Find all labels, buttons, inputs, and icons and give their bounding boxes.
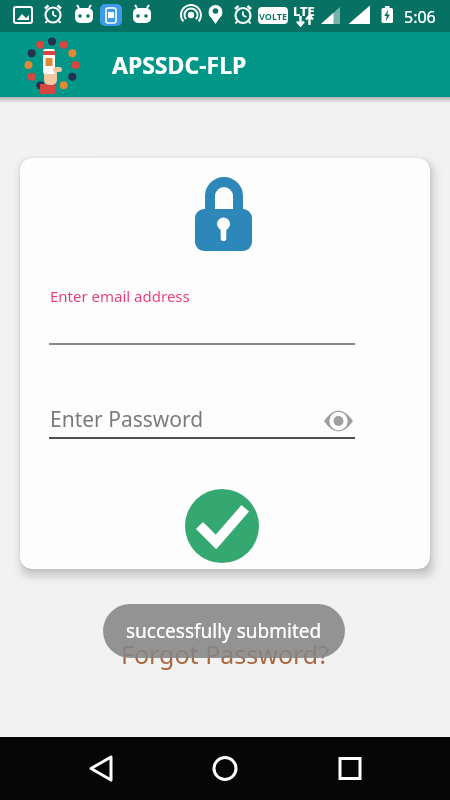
staticText: successfully submited: [126, 618, 322, 644]
staticText: LTE: [293, 2, 315, 20]
button[interactable]: [324, 411, 353, 431]
staticText: 5:06: [404, 6, 436, 28]
staticText: APSSDC-FLP: [112, 49, 247, 80]
button[interactable]: [150, 737, 300, 800]
button[interactable]: Forgot Password?: [0, 637, 450, 671]
button[interactable]: [185, 489, 259, 563]
button[interactable]: [300, 737, 450, 800]
button[interactable]: Enter Password: [50, 405, 204, 434]
button[interactable]: Enter email address: [50, 286, 190, 306]
button[interactable]: [0, 737, 150, 800]
staticText: VOLTE: [259, 10, 287, 22]
